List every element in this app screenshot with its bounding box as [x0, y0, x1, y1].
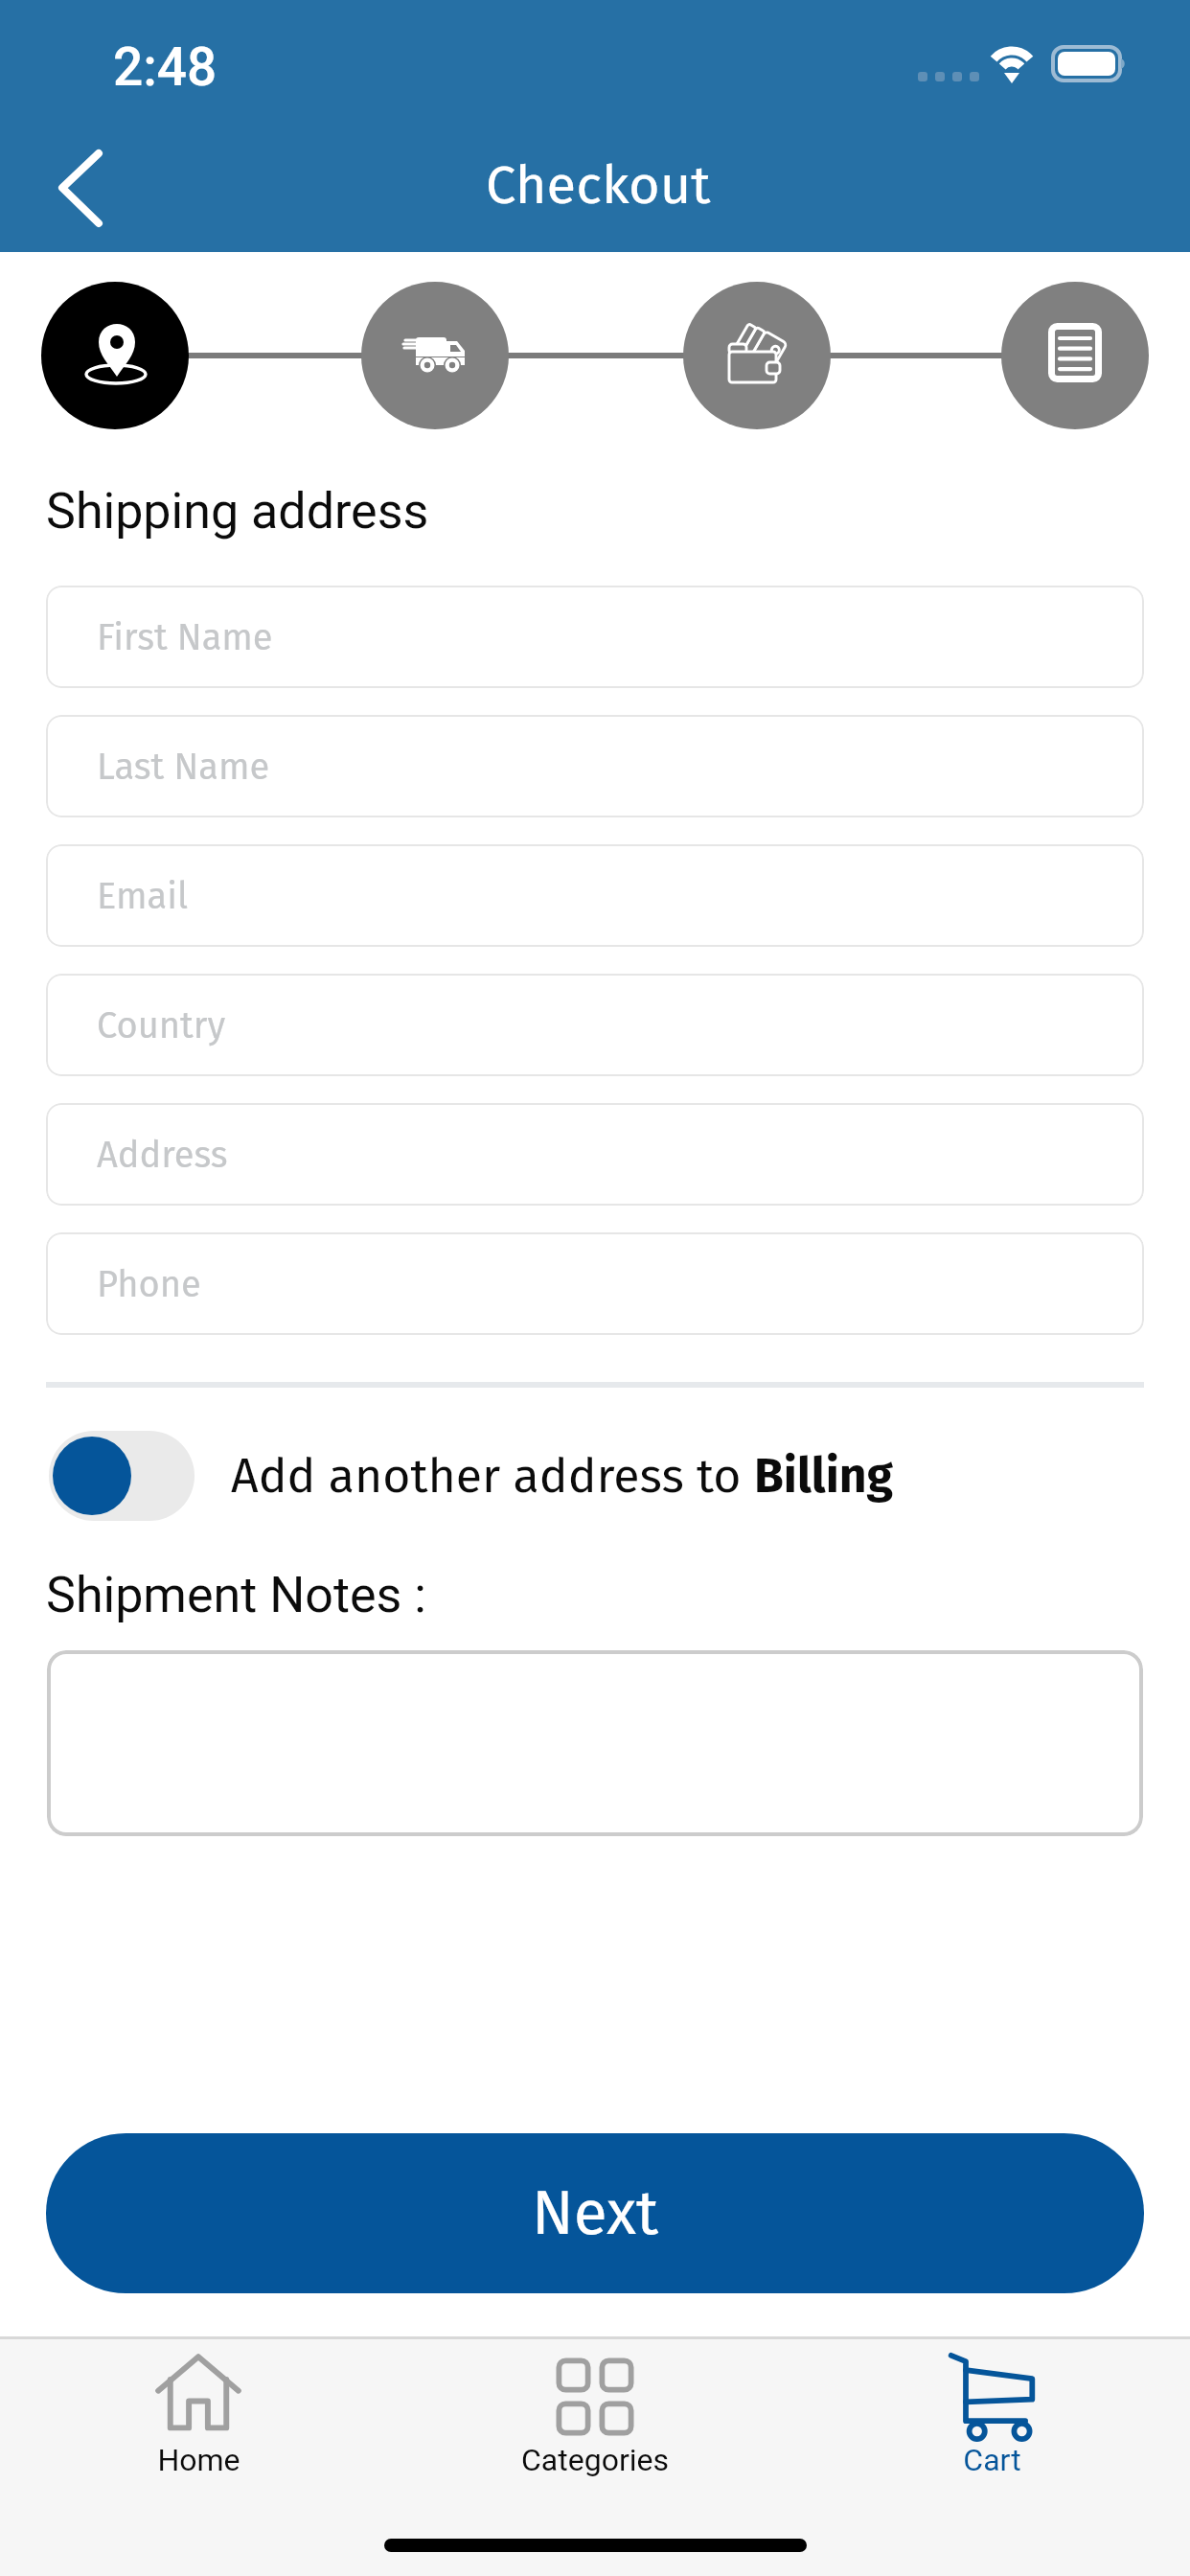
button[interactable]: Cart: [793, 2339, 1190, 2576]
button[interactable]: Next: [46, 2133, 1144, 2293]
button[interactable]: Shipment notes: [47, 1650, 1143, 1836]
staticText: Categories: [521, 2442, 669, 2478]
staticText: 2:48: [113, 36, 217, 98]
button[interactable]: Email: [46, 844, 1144, 947]
staticText: Address: [97, 1133, 228, 1177]
button[interactable]: Phone: [46, 1232, 1144, 1335]
button[interactable]: Add another address to Billing: [49, 1431, 195, 1521]
button[interactable]: Add another address to Billing: [0, 1418, 1190, 1533]
button[interactable]: Home: [0, 2339, 397, 2576]
staticText: Next: [532, 2176, 659, 2250]
staticText: Country: [97, 1003, 226, 1047]
staticText: Home: [157, 2442, 240, 2478]
staticText: First Name: [97, 615, 273, 659]
staticText: Cart: [963, 2442, 1021, 2478]
staticText: Email: [97, 874, 189, 918]
button[interactable]: Categories: [397, 2339, 793, 2576]
staticText: Add another address to: [231, 1447, 754, 1505]
button[interactable]: Address: [46, 1103, 1144, 1206]
staticText: Shipment Notes :: [46, 1566, 426, 1624]
staticText: Phone: [97, 1262, 201, 1306]
staticText: Last Name: [97, 745, 270, 789]
button[interactable]: Country: [46, 974, 1144, 1076]
button[interactable]: Back: [19, 130, 138, 247]
button[interactable]: Last Name: [46, 715, 1144, 817]
staticText: Shipping address: [46, 482, 429, 540]
staticText: Checkout: [486, 153, 711, 218]
staticText: Billing: [754, 1447, 894, 1505]
button[interactable]: First Name: [46, 586, 1144, 688]
